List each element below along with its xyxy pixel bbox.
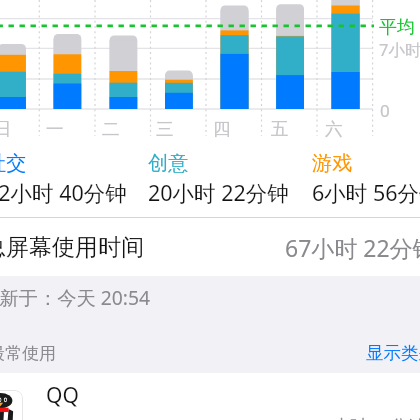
staticText: 3小时 10分钟 — [323, 414, 420, 420]
button[interactable]: 显示类别 — [360, 336, 420, 366]
staticText: 更新于：今天 20:54 — [0, 284, 151, 310]
staticText: QQ — [46, 381, 79, 410]
button[interactable] — [0, 373, 420, 420]
staticText: 一 — [46, 118, 64, 140]
button[interactable] — [0, 218, 420, 276]
staticText: 12小时 40分钟 — [0, 178, 127, 207]
staticText: 四 — [213, 118, 231, 140]
staticText: 20小时 22分钟 — [148, 178, 289, 207]
staticText: 67小时 22分钟 — [285, 232, 420, 263]
staticText: 总屏幕使用时间 — [0, 233, 144, 262]
staticText: 游戏 — [312, 151, 353, 176]
staticText: 平均 — [379, 16, 415, 39]
button[interactable] — [144, 148, 294, 202]
staticText: 创意 — [148, 151, 189, 176]
staticText: 7小时 — [379, 38, 420, 61]
staticText: 二 — [102, 118, 120, 140]
staticText: 日 — [0, 118, 12, 140]
staticText: 6小时 56分钟 — [312, 178, 420, 207]
staticText: 0 — [380, 99, 390, 122]
staticText: 五 — [271, 118, 289, 140]
staticText: 三 — [156, 118, 174, 140]
button[interactable] — [308, 148, 420, 202]
button[interactable] — [0, 148, 132, 202]
staticText: 最常使用 — [0, 343, 56, 364]
staticText: 六 — [325, 118, 343, 140]
staticText: 社交 — [0, 151, 27, 176]
staticText: 显示类别 — [366, 342, 420, 364]
